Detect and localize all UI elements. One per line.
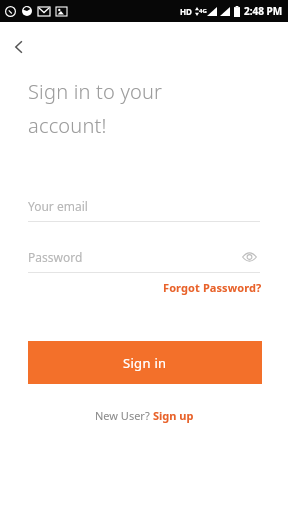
staticText: Your email	[28, 198, 88, 214]
button[interactable]: Password	[28, 246, 260, 268]
staticText: 4G	[199, 7, 207, 15]
staticText: Password	[28, 249, 83, 265]
staticText: HD	[180, 6, 192, 17]
staticText: Sign up	[153, 408, 194, 423]
button[interactable]: New User?	[95, 408, 194, 423]
staticText: 2:48 PM	[244, 4, 283, 18]
staticText: Sign in to your	[28, 78, 163, 105]
button[interactable]: Back	[2, 30, 36, 64]
button[interactable]: Forgot Password?	[163, 280, 262, 295]
button[interactable]: Show password	[238, 246, 260, 268]
staticText: Sign in	[123, 354, 167, 372]
staticText: New User?	[95, 408, 153, 423]
button[interactable]: Sign in	[28, 341, 262, 384]
staticText: Forgot Password?	[163, 280, 262, 295]
button[interactable]: Your email	[28, 195, 260, 217]
staticText: account!	[28, 112, 107, 139]
